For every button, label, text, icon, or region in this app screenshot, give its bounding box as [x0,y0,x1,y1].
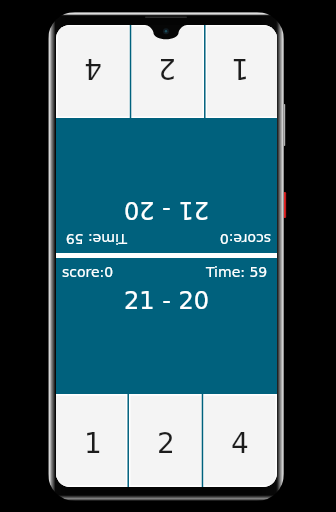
staticText: 21 - 20 [124,196,209,224]
staticText: 4 [231,427,249,460]
button[interactable]: 2 [130,25,204,118]
staticText: 21 - 20 [124,287,209,315]
staticText: score:0 [62,264,114,280]
button[interactable]: 1 [56,394,129,487]
staticText: score:0 [219,231,271,247]
staticText: 1 [231,52,249,85]
staticText: 1 [84,427,102,460]
staticText: Time: 59 [206,264,268,280]
staticText: Time: 59 [65,231,127,247]
staticText: 4 [84,52,102,85]
button[interactable]: 4 [203,394,277,487]
button[interactable]: 1 [204,25,277,118]
button[interactable]: 2 [129,394,203,487]
staticText: 2 [158,52,176,85]
staticText: 2 [157,427,175,460]
button[interactable]: 4 [56,25,130,118]
